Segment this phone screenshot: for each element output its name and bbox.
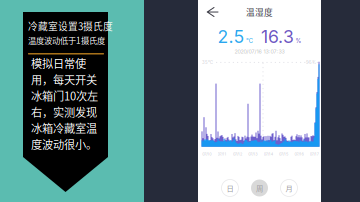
staticText: 模拟日常使 — [31, 55, 86, 71]
staticText: 2.5 — [217, 26, 244, 47]
staticText: 冰箱门10次左 — [31, 87, 98, 104]
staticText: 冰箱冷藏室温 — [31, 120, 97, 136]
staticText: 07/17 — [310, 152, 319, 156]
staticText: 07/10 — [202, 152, 211, 156]
staticText: 月 — [285, 183, 292, 193]
staticText: 冷藏室设置3摄氏度 — [28, 19, 113, 33]
staticText: 温湿度 — [246, 6, 273, 18]
button[interactable]: 周 — [251, 179, 268, 196]
staticText: 温度波动低于1摄氏度 — [28, 34, 105, 46]
staticText: 度波动很小。 — [31, 136, 97, 152]
staticText: ℃ — [246, 37, 253, 44]
staticText: 07/13 — [248, 152, 257, 156]
staticText: 2020/07/16 13:07:33 — [234, 48, 284, 55]
button[interactable]: Back — [198, 3, 219, 20]
staticText: 日 — [226, 183, 233, 193]
staticText: 07/14 — [264, 152, 273, 156]
staticText: 35℃ — [202, 60, 213, 65]
button[interactable]: 月 — [280, 179, 297, 196]
staticText: 07/11 — [218, 152, 227, 156]
staticText: 周 — [256, 183, 263, 193]
staticText: % — [295, 37, 301, 44]
button[interactable]: 日 — [221, 179, 238, 196]
staticText: 16.3 — [261, 26, 294, 47]
staticText: 07/12 — [233, 152, 242, 156]
staticText: 右，实测发现 — [31, 104, 97, 120]
staticText: 用，每天开关 — [31, 71, 97, 87]
staticText: 07/15 — [279, 152, 288, 156]
staticText: 07/16 — [294, 152, 303, 156]
staticText: 95% — [306, 60, 316, 65]
